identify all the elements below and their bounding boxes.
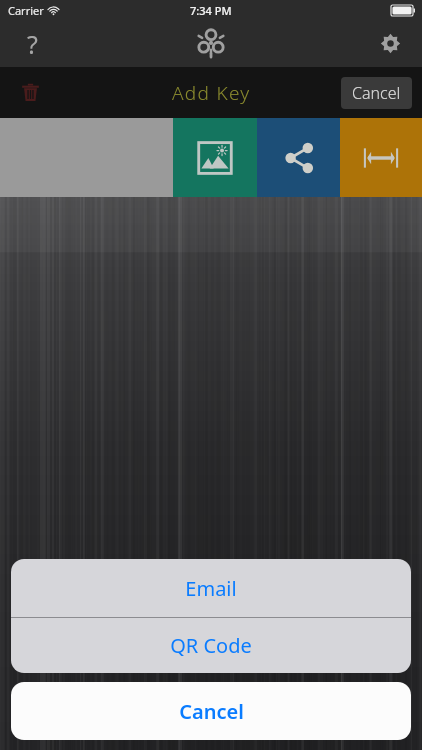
- staticText: 7:34 PM: [190, 3, 232, 18]
- button[interactable]: Delete: [0, 67, 60, 118]
- button[interactable]: Image: [173, 118, 257, 197]
- button[interactable]: Share: [257, 118, 340, 197]
- button[interactable]: QR Code: [11, 618, 411, 673]
- button[interactable]: Resize: [340, 118, 422, 197]
- button[interactable]: Cancel: [341, 77, 412, 109]
- staticText: ?: [27, 27, 38, 61]
- button[interactable]: Settings: [358, 20, 422, 67]
- staticText: Carrier: [8, 3, 44, 18]
- staticText: QR Code: [170, 632, 252, 659]
- staticText: Cancel: [179, 698, 244, 725]
- button[interactable]: App logo: [184, 20, 238, 67]
- button[interactable]: Help: [0, 20, 64, 67]
- staticText: Cancel: [352, 82, 401, 104]
- staticText: Email: [185, 575, 237, 602]
- button[interactable]: Cancel: [11, 682, 411, 740]
- button[interactable]: Email: [11, 559, 411, 617]
- staticText: Add Key: [172, 80, 251, 106]
